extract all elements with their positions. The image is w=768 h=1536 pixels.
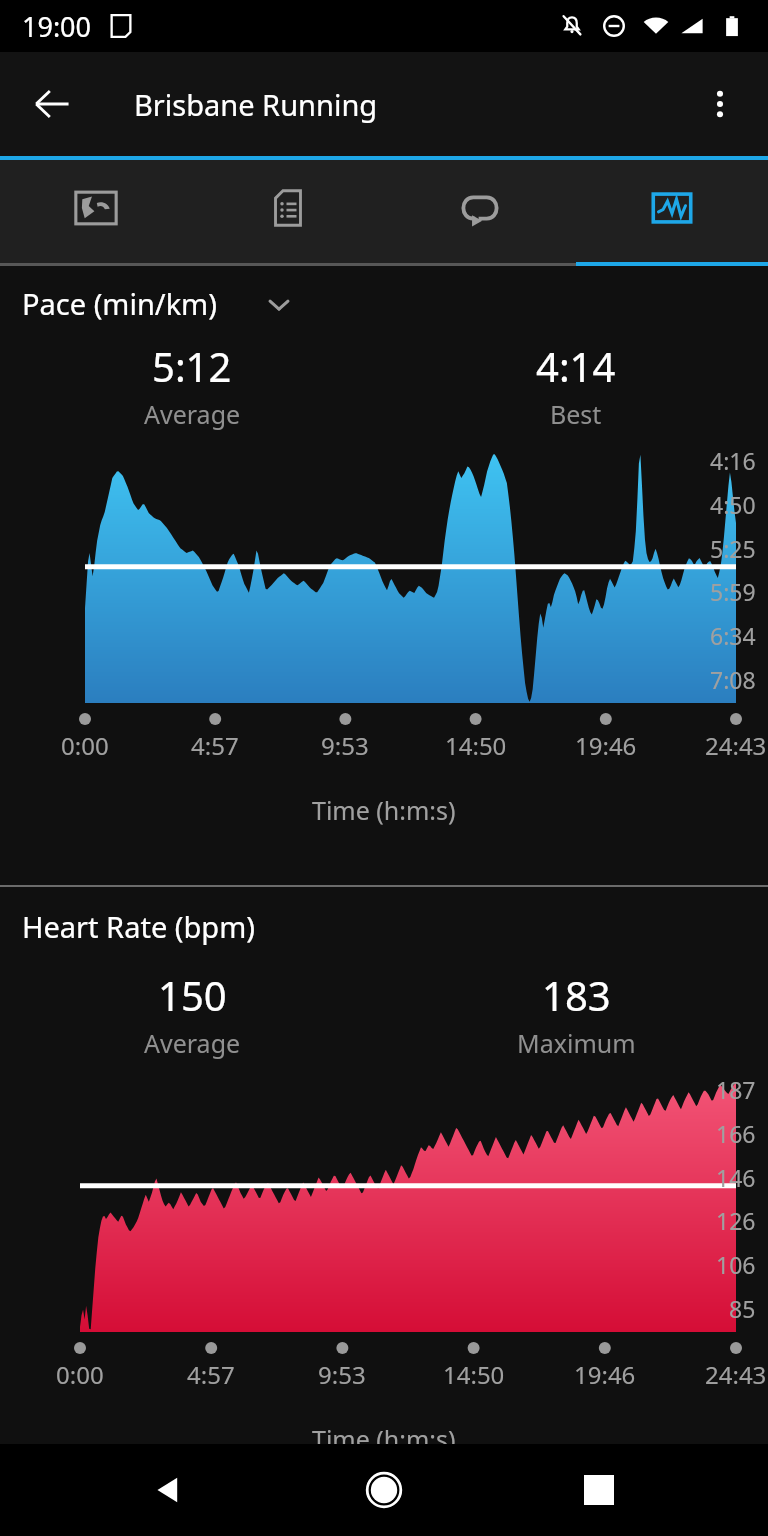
staticText: 4:14 — [536, 339, 616, 393]
staticText: 14:50 — [443, 1358, 505, 1391]
staticText: Heart Rate (bpm) — [22, 907, 255, 946]
staticText: 126 — [716, 1205, 756, 1236]
staticText: 85 — [729, 1293, 756, 1324]
staticText: Best — [550, 397, 602, 431]
staticText: 5:25 — [710, 533, 756, 564]
staticText: 0:00 — [56, 1358, 104, 1391]
staticText: Brisbane Running — [134, 85, 378, 124]
staticText: 106 — [716, 1249, 756, 1280]
staticText: 6:34 — [710, 620, 756, 651]
staticText: 4:16 — [710, 445, 756, 476]
staticText: 146 — [716, 1162, 756, 1193]
staticText: 4:50 — [710, 489, 756, 520]
staticText: Average — [144, 397, 241, 431]
staticText: Pace (min/km) — [22, 284, 217, 323]
staticText: 4:57 — [191, 729, 239, 762]
staticText: 24:43 — [705, 729, 767, 762]
button[interactable]: Laps — [384, 160, 576, 266]
staticText: 9:53 — [321, 729, 369, 762]
button[interactable]: Recent apps — [553, 1444, 645, 1536]
staticText: 187 — [716, 1074, 756, 1105]
button[interactable]: Back — [123, 1444, 215, 1536]
staticText: 14:50 — [445, 729, 507, 762]
staticText: 150 — [158, 968, 227, 1022]
button[interactable]: Pace (min/km) — [22, 284, 768, 323]
button[interactable]: Navigate up — [16, 68, 88, 140]
staticText: 19:00 — [22, 8, 92, 45]
staticText: 19:46 — [574, 1358, 636, 1391]
staticText: Average — [144, 1026, 241, 1060]
button[interactable]: Charts — [576, 160, 768, 266]
staticText: 4:57 — [187, 1358, 235, 1391]
button[interactable]: Map — [0, 160, 192, 266]
staticText: 5:12 — [152, 339, 232, 393]
staticText: 19:46 — [575, 729, 637, 762]
staticText: 166 — [716, 1118, 756, 1149]
staticText: Maximum — [517, 1026, 636, 1060]
staticText: 7:08 — [710, 664, 756, 695]
button[interactable]: Details — [192, 160, 384, 266]
staticText: Time (h:m:s) — [312, 1422, 456, 1444]
button[interactable]: Home — [338, 1444, 430, 1536]
staticText: 183 — [542, 968, 611, 1022]
staticText: 9:53 — [318, 1358, 366, 1391]
staticText: 0:00 — [61, 729, 109, 762]
staticText: 5:59 — [710, 576, 756, 607]
button[interactable]: More options — [684, 68, 756, 140]
staticText: Time (h:m:s) — [312, 793, 456, 827]
staticText: 24:43 — [705, 1358, 767, 1391]
